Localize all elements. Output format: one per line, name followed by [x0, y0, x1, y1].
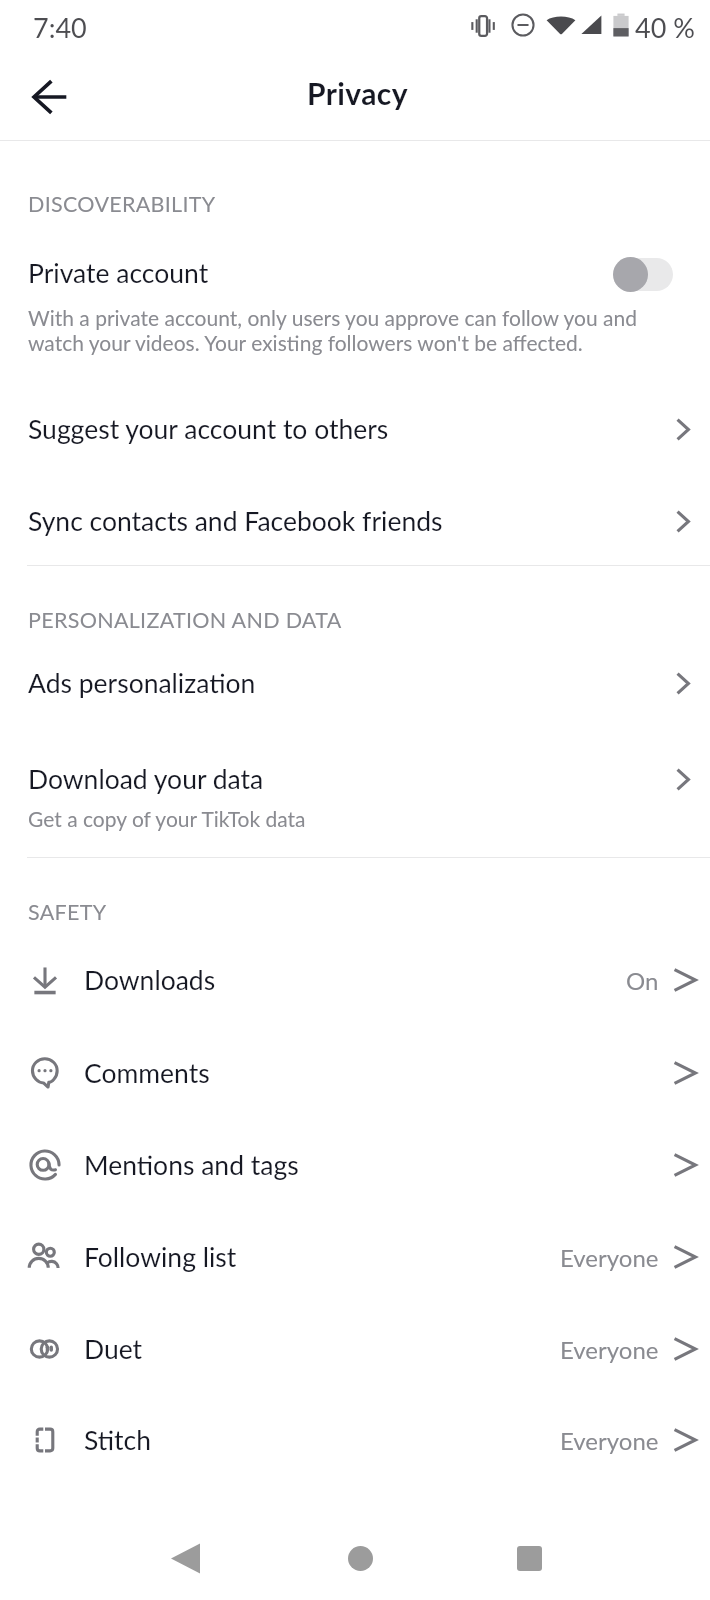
button[interactable]: Mentions and tags	[0, 1132, 710, 1198]
button[interactable]: Back	[130, 1514, 240, 1600]
button[interactable]: Sync contacts and Facebook friends	[0, 488, 710, 554]
staticText: Duet	[84, 1333, 560, 1365]
staticText: On	[626, 966, 659, 995]
staticText: Everyone	[560, 1426, 659, 1455]
staticText: Following list	[84, 1241, 560, 1273]
button[interactable]: Private account	[0, 232, 710, 362]
staticText: 40 %	[635, 11, 695, 43]
staticText: Suggest your account to others	[28, 413, 389, 445]
button[interactable]: Ads personalization	[0, 650, 710, 716]
button[interactable]: Home	[305, 1514, 415, 1600]
staticText: Privacy	[307, 75, 408, 111]
staticText: DISCOVERABILITY	[28, 191, 216, 217]
staticText: Everyone	[560, 1335, 659, 1364]
staticText: Download your data	[28, 763, 264, 795]
staticText: Sync contacts and Facebook friends	[28, 505, 443, 537]
staticText: With a private account, only users you a…	[28, 305, 653, 355]
button[interactable]: Comments	[0, 1040, 710, 1106]
button[interactable]: Recent apps	[474, 1514, 584, 1600]
button[interactable]: Downloads	[0, 947, 710, 1013]
staticText: Comments	[84, 1057, 673, 1089]
staticText: Mentions and tags	[84, 1149, 673, 1181]
button[interactable]: Following list	[0, 1224, 710, 1290]
staticText: SAFETY	[28, 899, 107, 925]
staticText: 7:40	[33, 11, 87, 43]
staticText: Everyone	[560, 1243, 659, 1272]
staticText: Get a copy of your TikTok data	[28, 806, 306, 831]
staticText: PERSONALIZATION AND DATA	[28, 607, 342, 633]
staticText: Ads personalization	[28, 667, 256, 699]
staticText: Stitch	[84, 1424, 560, 1456]
button[interactable]: Suggest your account to others	[0, 396, 710, 462]
button[interactable]: Download your data	[0, 746, 710, 842]
button[interactable]: Back	[18, 65, 82, 129]
staticText: Private account	[28, 257, 209, 289]
button[interactable]: Stitch	[0, 1407, 710, 1473]
staticText: Downloads	[84, 964, 626, 996]
button[interactable]: Duet	[0, 1316, 710, 1382]
